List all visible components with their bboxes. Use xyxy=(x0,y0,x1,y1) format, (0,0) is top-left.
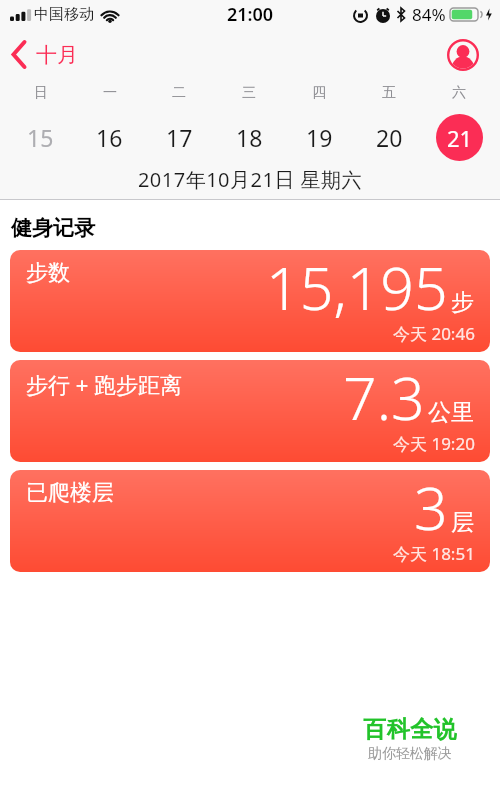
staticText: 步数 xyxy=(26,259,70,287)
staticText: 中国移动 xyxy=(34,5,94,24)
staticText: 公里 xyxy=(428,398,474,427)
staticText: 21:00 xyxy=(227,2,274,27)
staticText: 步行 + 跑步距离 xyxy=(26,369,183,399)
button[interactable]: 21 xyxy=(436,114,483,161)
staticText: 今天 20:46 xyxy=(393,322,475,345)
button[interactable]: 18 xyxy=(236,122,263,153)
button[interactable]: 十月 xyxy=(10,40,78,70)
staticText: 健身记录 xyxy=(11,215,95,241)
staticText: 3 xyxy=(414,470,448,547)
staticText: 二 xyxy=(172,84,186,102)
staticText: 十月 xyxy=(36,42,78,68)
button[interactable]: 步行 + 跑步距离 xyxy=(10,360,490,462)
staticText: 21 xyxy=(447,123,473,153)
button[interactable]: 17 xyxy=(166,122,193,153)
staticText: 五 xyxy=(382,84,396,102)
button[interactable]: 15 xyxy=(27,122,54,153)
staticText: 日 xyxy=(34,84,48,102)
staticText: 今天 18:51 xyxy=(393,542,475,565)
button[interactable]: 19 xyxy=(306,122,333,153)
staticText: 7.3 xyxy=(343,360,425,437)
staticText: 百科全说 xyxy=(363,715,457,744)
staticText: 四 xyxy=(312,84,326,102)
staticText: 三 xyxy=(242,84,256,102)
staticText: 84% xyxy=(412,3,446,26)
staticText: 步 xyxy=(451,288,474,317)
staticText: 六 xyxy=(452,84,466,102)
staticText: 已爬楼层 xyxy=(26,479,114,507)
staticText: 2017年10月21日 星期六 xyxy=(0,166,500,193)
button[interactable] xyxy=(447,39,479,71)
button[interactable]: 16 xyxy=(96,122,123,153)
staticText: 今天 19:20 xyxy=(393,432,475,455)
staticText: 15,195 xyxy=(266,250,448,327)
button[interactable]: 步数 xyxy=(10,250,490,352)
staticText: 助你轻松解决 xyxy=(368,745,452,763)
staticText: 一 xyxy=(103,84,117,102)
staticText: 层 xyxy=(451,508,474,537)
button[interactable]: 20 xyxy=(376,122,403,153)
button[interactable]: 已爬楼层 xyxy=(10,470,490,572)
